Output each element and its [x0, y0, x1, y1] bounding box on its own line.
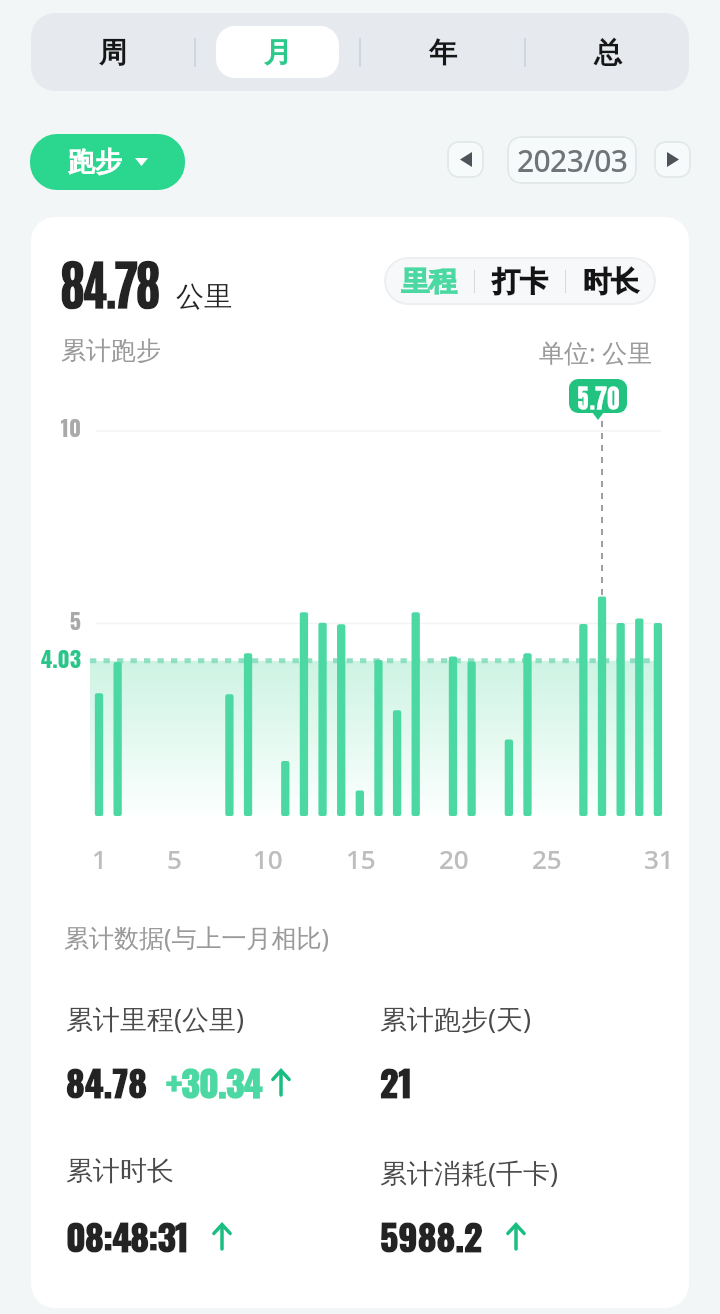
staticText: 跑步 — [68, 145, 122, 179]
staticText: 年 — [429, 35, 457, 70]
staticText: 2023/03 — [517, 140, 628, 181]
staticText: 25 — [532, 841, 562, 876]
staticText: 20 — [439, 841, 469, 876]
staticText: 周 — [99, 35, 127, 70]
staticText: 5988.2 — [380, 1209, 483, 1262]
staticText: 公里 — [176, 279, 232, 314]
staticText: 打卡 — [492, 264, 548, 299]
staticText: 累计时长 — [66, 1154, 174, 1188]
staticText: 08:48:31 — [66, 1209, 189, 1262]
staticText: 4.03 — [31, 642, 81, 675]
staticText: 1 — [92, 841, 107, 876]
button[interactable]: 时长 — [566, 257, 656, 305]
staticText: 里程 — [401, 264, 457, 299]
staticText: 累计里程(公里) — [66, 1000, 245, 1037]
staticText: 15 — [346, 841, 376, 876]
button[interactable]: 月 — [216, 26, 339, 78]
staticText: 累计消耗(千卡) — [380, 1154, 559, 1191]
staticText: 累计数据(与上一月相比) — [64, 920, 330, 954]
button[interactable]: 打卡 — [475, 257, 565, 305]
staticText: 单位: 公里 — [539, 335, 653, 369]
staticText: 5 — [31, 604, 81, 637]
staticText: 84.78 — [60, 246, 158, 316]
button[interactable]: 总 — [546, 26, 669, 78]
staticText: 21 — [380, 1055, 413, 1108]
staticText: 5.70 — [577, 379, 620, 413]
staticText: 累计跑步 — [61, 335, 161, 366]
button[interactable]: 年 — [381, 26, 504, 78]
staticText: 累计跑步(天) — [380, 1000, 532, 1037]
staticText: 84.78 — [66, 1055, 147, 1108]
staticText: 5 — [167, 841, 182, 876]
button[interactable]: 里程 — [384, 257, 474, 305]
staticText: 时长 — [583, 264, 639, 299]
button[interactable]: 跑步 — [30, 134, 185, 190]
staticText: +30.34 — [166, 1055, 262, 1108]
button[interactable]: Next month — [654, 141, 691, 178]
staticText: 月 — [264, 35, 292, 70]
button[interactable]: 周 — [51, 26, 174, 78]
staticText: 31 — [644, 841, 674, 876]
staticText: 总 — [594, 35, 622, 70]
button[interactable]: Previous month — [447, 141, 484, 178]
staticText: 10 — [31, 411, 81, 444]
staticText: 10 — [253, 841, 283, 876]
button[interactable]: 2023/03 — [507, 136, 637, 184]
